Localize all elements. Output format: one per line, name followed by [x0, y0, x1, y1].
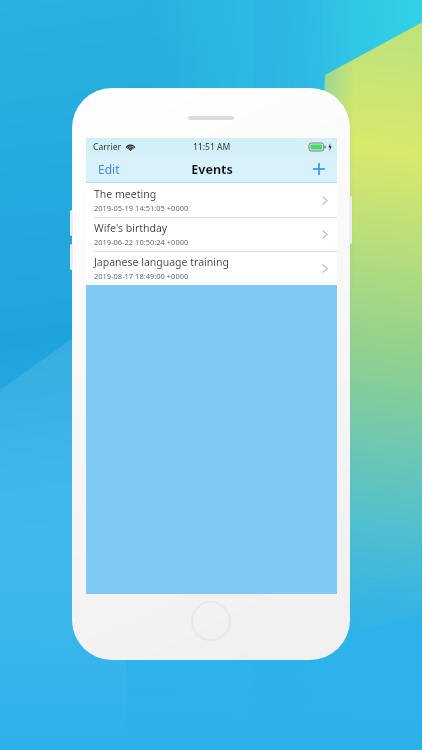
staticText: 2019-06-22 10:50:24 +0000 — [94, 237, 189, 247]
staticText: 2019-08-17 18:49:00 +0000 — [94, 271, 189, 281]
staticText: Events — [191, 161, 233, 178]
button[interactable]: Wife's birthday — [86, 217, 337, 251]
staticText: Japanese language training — [94, 255, 229, 269]
staticText: 2019-05-19 14:51:05 +0000 — [94, 203, 189, 213]
button[interactable]: The meeting — [86, 183, 337, 217]
staticText: Carrier — [93, 141, 122, 153]
staticText: Edit — [98, 161, 120, 177]
staticText: Wife's birthday — [94, 221, 168, 235]
staticText: 11:51 AM — [193, 141, 231, 153]
staticText: The meeting — [94, 187, 157, 201]
button[interactable]: Edit — [86, 155, 132, 183]
button[interactable]: Add event — [301, 155, 337, 183]
button[interactable]: Japanese language training — [86, 251, 337, 285]
